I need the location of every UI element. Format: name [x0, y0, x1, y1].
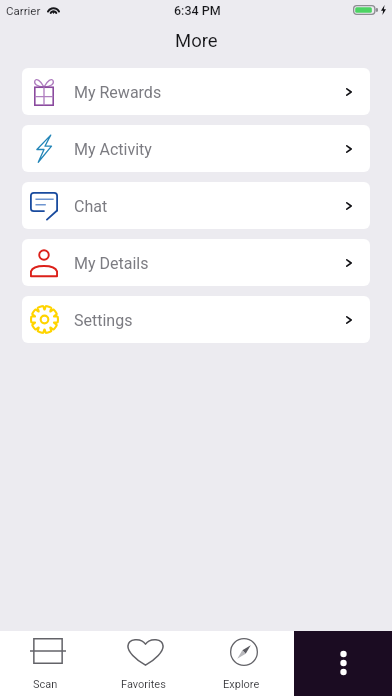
staticText: Scan	[33, 678, 58, 691]
button[interactable]: Favorites	[98, 631, 196, 696]
button[interactable]: Explore	[196, 631, 294, 696]
button[interactable]: Chat	[22, 182, 370, 229]
staticText: 6:34 PM	[174, 3, 221, 18]
button[interactable]: Settings	[22, 296, 370, 343]
staticText: More	[175, 30, 218, 52]
staticText: My Activity	[74, 140, 152, 159]
staticText: Chat	[74, 197, 108, 216]
button[interactable]: More options	[294, 631, 392, 696]
staticText: My Details	[74, 254, 149, 273]
staticText: Favorites	[121, 678, 166, 691]
button[interactable]: My Rewards	[22, 68, 370, 115]
button[interactable]: Scan	[0, 631, 98, 696]
staticText: My Rewards	[74, 83, 162, 102]
button[interactable]: My Details	[22, 239, 370, 286]
button[interactable]: My Activity	[22, 125, 370, 172]
staticText: Explore	[223, 678, 260, 691]
staticText: Carrier	[6, 4, 41, 17]
staticText: Settings	[74, 311, 133, 330]
